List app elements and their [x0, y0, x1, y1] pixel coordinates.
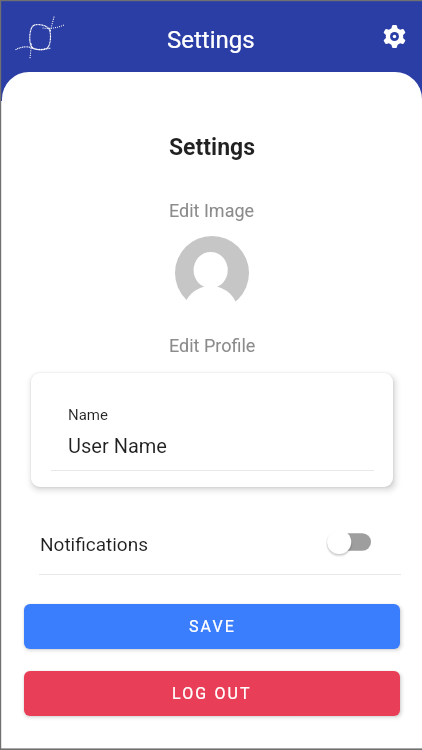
button[interactable]: LOG OUT [24, 671, 400, 716]
staticText: LOG OUT [172, 684, 252, 703]
staticText: SAVE [189, 617, 236, 636]
staticText: Settings [2, 134, 422, 161]
button[interactable]: Notifications [40, 513, 401, 574]
staticText: User Name [68, 434, 167, 457]
button[interactable]: SAVE [24, 604, 400, 649]
button[interactable]: Edit Profile [169, 335, 256, 356]
staticText: Notifications [40, 533, 149, 555]
button[interactable]: Edit Image [169, 200, 255, 221]
button[interactable]: Settings [372, 14, 416, 58]
staticText: Name [68, 406, 108, 424]
button[interactable]: App logo [6, 8, 66, 68]
staticText: Settings [167, 26, 255, 54]
button[interactable]: Notifications toggle [327, 527, 371, 557]
